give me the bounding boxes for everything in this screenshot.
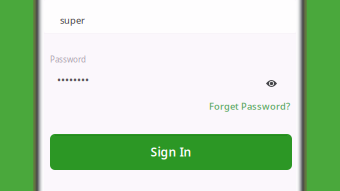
staticText: super [60, 14, 85, 26]
staticText: Password [50, 54, 86, 65]
staticText: Forget Password? [209, 100, 290, 112]
button[interactable]: Sign In [50, 134, 292, 170]
staticText: Sign In [150, 144, 191, 160]
button[interactable]: •••••••• [44, 70, 254, 94]
button[interactable]: Show password [261, 73, 282, 94]
staticText: •••••••• [57, 73, 89, 87]
button[interactable]: Forget Password? [207, 97, 292, 115]
button[interactable]: super [44, 0, 296, 33]
